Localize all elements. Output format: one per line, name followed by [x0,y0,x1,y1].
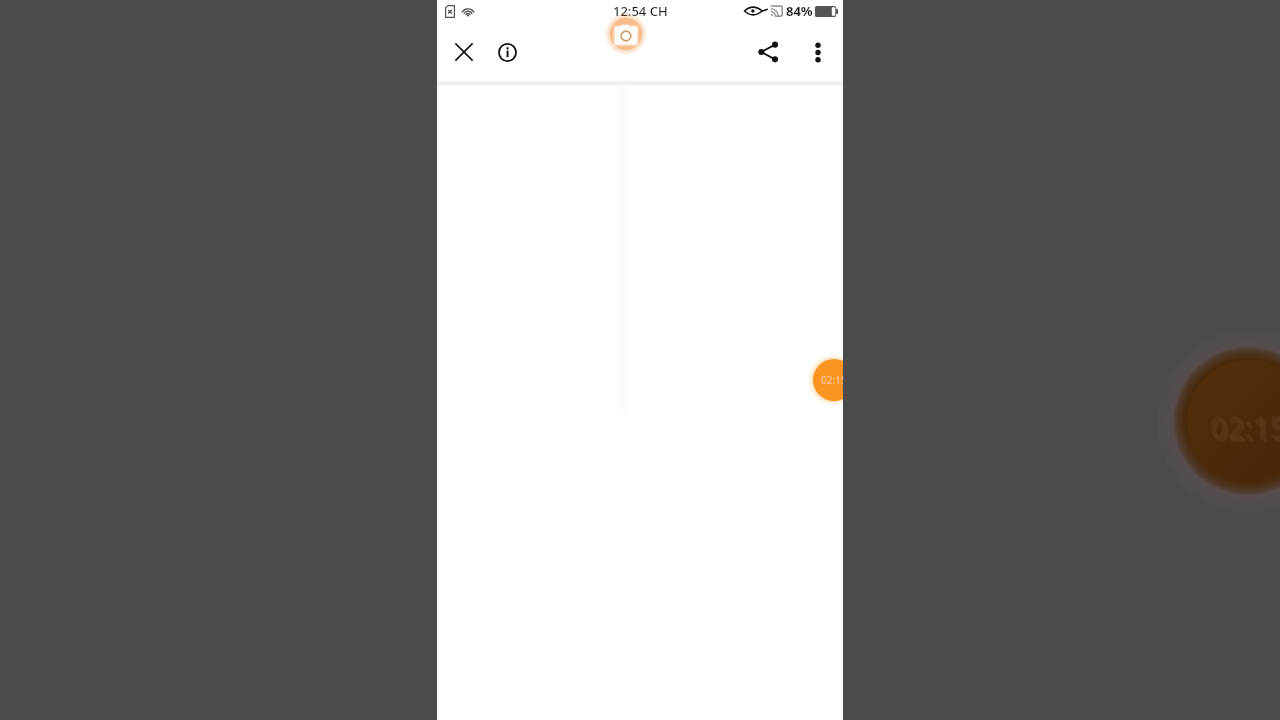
staticText: 02:15 [1210,407,1280,448]
button[interactable]: Share [747,31,789,73]
staticText: 02:15 [1212,409,1280,450]
button[interactable]: Close [443,31,485,73]
staticText: 84% [786,2,813,20]
staticText: 02:15 [1213,410,1280,451]
staticText: 12:54 CH [613,2,668,20]
button[interactable]: Recording timer 02:15 [813,359,843,401]
staticText: 02:15 [1209,406,1280,447]
button[interactable]: Information [486,31,528,73]
staticText: 02:15 [821,373,843,387]
button[interactable]: More options [797,31,839,73]
staticText: 02:15 [1211,408,1280,449]
